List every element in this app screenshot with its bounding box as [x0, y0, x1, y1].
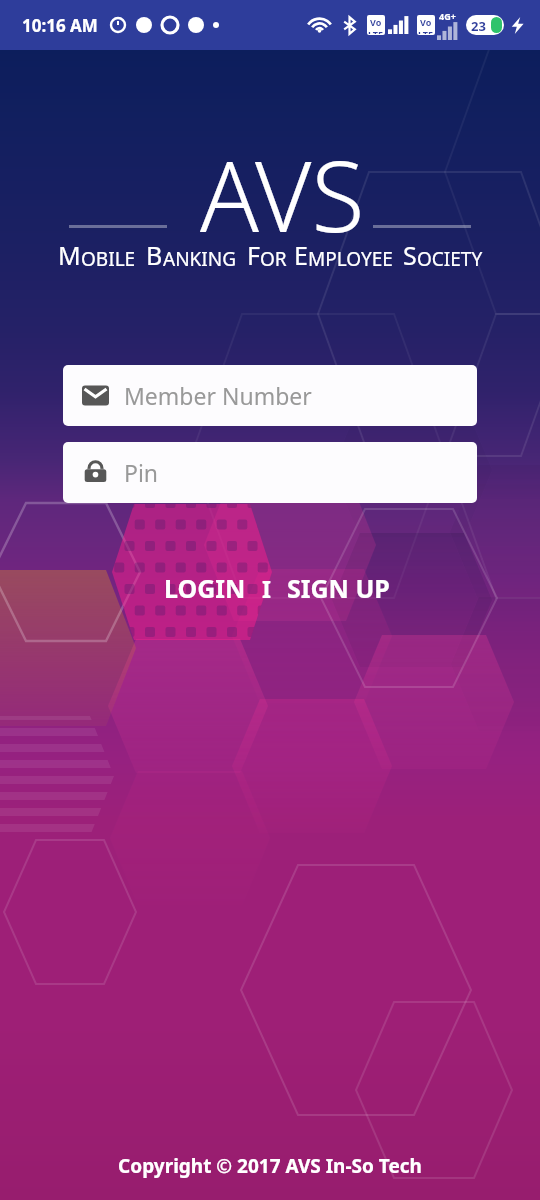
staticText: S [403, 238, 417, 272]
staticText: AVS [200, 128, 365, 260]
staticText: OR [260, 246, 287, 272]
other: Alarm [109, 16, 127, 34]
button[interactable]: Pin [63, 442, 477, 503]
staticText: F [247, 238, 260, 272]
other: Bluetooth [340, 16, 359, 35]
staticText: Pin [124, 457, 159, 488]
staticText: Vo [370, 16, 382, 28]
other: Wi-Fi [308, 14, 331, 37]
staticText: OCIETY [417, 246, 483, 272]
staticText: 10:16 AM [22, 14, 98, 37]
staticText: OBILE [81, 246, 136, 272]
staticText: ANKING [163, 246, 237, 272]
staticText: Copyright © 2017 AVS In-So Tech [118, 1153, 422, 1179]
staticText: M [58, 238, 81, 272]
staticText: LTE [368, 28, 384, 34]
staticText: E [294, 238, 308, 272]
button[interactable]: SIGN UP [277, 563, 400, 613]
staticText: Member Number [124, 380, 312, 411]
button[interactable]: LOGIN [154, 563, 256, 613]
staticText: 4G+ [439, 10, 456, 22]
staticText: MPLOYEE [308, 246, 393, 272]
staticText: Vo [420, 16, 432, 28]
staticText: SIGN UP [287, 571, 390, 605]
button[interactable]: Member Number [63, 365, 477, 426]
staticText: 23 [471, 17, 486, 33]
other: Charging [509, 17, 526, 34]
staticText: B [146, 238, 163, 272]
staticText: LTE [418, 28, 434, 34]
other: Battery 23 percent [468, 17, 502, 33]
staticText: I [262, 573, 271, 604]
staticText: LOGIN [164, 571, 246, 605]
